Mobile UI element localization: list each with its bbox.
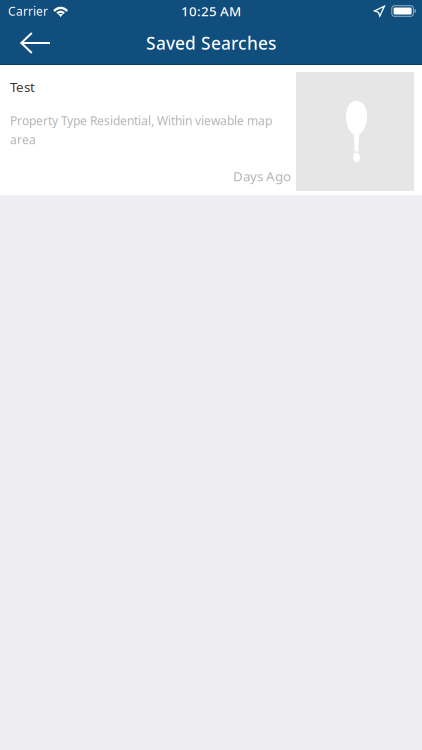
- staticText: 10:25 AM: [181, 2, 241, 20]
- staticText: Saved Searches: [146, 31, 276, 54]
- staticText: Test: [10, 78, 35, 96]
- staticText: Carrier: [8, 3, 48, 19]
- staticText: Days Ago: [233, 167, 291, 185]
- button[interactable]: Back: [0, 22, 65, 64]
- staticText: Property Type Residential, Within viewab…: [10, 113, 272, 148]
- button[interactable]: Test: [0, 65, 422, 195]
